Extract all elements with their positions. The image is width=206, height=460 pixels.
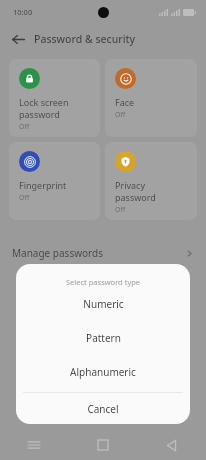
button[interactable]: Recent apps (0, 430, 68, 460)
staticText: Off (19, 193, 30, 203)
staticText: Off (19, 122, 30, 132)
staticText: Pattern (86, 331, 121, 345)
button[interactable]: Manage passwords (0, 240, 206, 266)
button[interactable]: Face (105, 59, 197, 137)
staticText: Numeric (83, 297, 124, 311)
button[interactable]: Home (68, 430, 137, 460)
staticText: Off (115, 205, 126, 215)
button[interactable]: Pattern (16, 321, 190, 355)
button[interactable]: Back (137, 430, 206, 460)
staticText: Manage passwords (12, 246, 185, 260)
button[interactable]: Privacy password (105, 142, 197, 220)
button[interactable]: Alphanumeric (16, 355, 190, 389)
staticText: Fingerprint (19, 179, 67, 191)
staticText: Face (115, 96, 135, 108)
staticText: Select password type (16, 277, 190, 287)
staticText: Alphanumeric (70, 365, 136, 379)
button[interactable]: Back (7, 28, 29, 50)
staticText: Off (115, 110, 126, 120)
staticText: Lock screen password (19, 96, 69, 120)
staticText: 10:00 (13, 7, 33, 17)
button[interactable]: Fingerprint (9, 142, 100, 220)
staticText: Password & security (34, 32, 136, 46)
button[interactable]: Numeric (16, 287, 190, 321)
staticText: Cancel (87, 402, 119, 416)
staticText: Privacy password (115, 179, 156, 203)
button[interactable]: Cancel (16, 393, 190, 424)
button[interactable]: Lock screen password (9, 59, 100, 137)
